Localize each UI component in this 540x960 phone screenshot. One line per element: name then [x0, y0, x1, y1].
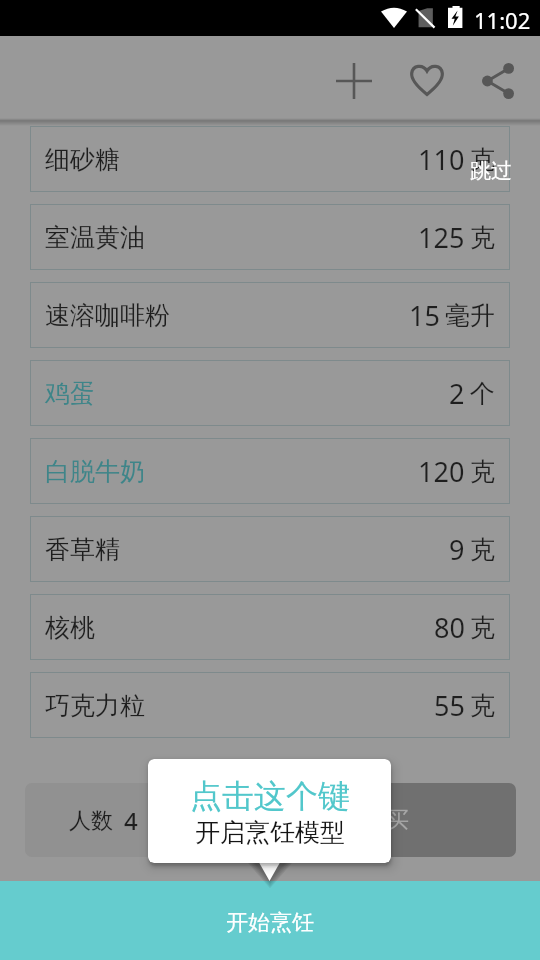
staticText: 克 — [470, 222, 495, 253]
button[interactable]: 室温黄油 — [30, 204, 510, 270]
button[interactable]: 核桃 — [30, 594, 510, 660]
staticText: 125 — [418, 219, 465, 256]
button[interactable]: 巧克力粒 — [30, 672, 510, 738]
staticText: 克 — [470, 612, 495, 643]
staticText: 克 — [470, 144, 495, 175]
button[interactable]: 速溶咖啡粉 — [30, 282, 510, 348]
staticText: 跳过 — [470, 158, 512, 184]
button[interactable]: 香草精 — [30, 516, 510, 582]
staticText: 15 — [409, 297, 440, 334]
button[interactable]: 白脱牛奶 — [30, 438, 510, 504]
staticText: 9 — [449, 531, 465, 568]
staticText: 毫升 — [445, 300, 495, 331]
staticText: 开启烹饪模型 — [195, 817, 345, 848]
button[interactable]: 跳过 — [470, 158, 512, 184]
staticText: 香草精 — [45, 534, 120, 565]
staticText: 速溶咖啡粉 — [45, 300, 170, 331]
staticText: 鸡蛋 — [45, 378, 95, 409]
staticText: 个 — [470, 378, 495, 409]
button[interactable]: 购买 — [258, 783, 516, 857]
staticText: 110 — [418, 141, 465, 178]
button[interactable]: 点击这个键 — [148, 759, 391, 863]
button[interactable]: Favorite — [410, 64, 444, 96]
button[interactable]: 开始烹饪 — [0, 881, 540, 960]
staticText: 开始烹饪 — [226, 909, 314, 937]
staticText: 巧克力粒 — [45, 690, 145, 721]
button[interactable]: 人数 — [25, 783, 250, 857]
staticText: 室温黄油 — [45, 222, 145, 253]
staticText: 80 — [434, 609, 465, 646]
staticText: 核桃 — [45, 612, 95, 643]
staticText: 人数 — [69, 807, 113, 835]
button[interactable]: Add — [336, 63, 372, 99]
button[interactable]: 细砂糖 — [30, 126, 510, 192]
staticText: 120 — [418, 453, 465, 490]
staticText: 55 — [434, 687, 465, 724]
button[interactable]: 鸡蛋 — [30, 360, 510, 426]
staticText: 细砂糖 — [45, 144, 120, 175]
button[interactable]: Share — [482, 63, 514, 99]
staticText: 购买 — [365, 806, 409, 834]
staticText: 白脱牛奶 — [45, 456, 145, 487]
staticText: 克 — [470, 456, 495, 487]
staticText: 点击这个键 — [190, 776, 350, 816]
staticText: 2 — [449, 375, 465, 412]
staticText: 克 — [470, 534, 495, 565]
staticText: 4 — [124, 804, 138, 837]
staticText: 克 — [470, 690, 495, 721]
staticText: 11:02 — [474, 5, 531, 35]
